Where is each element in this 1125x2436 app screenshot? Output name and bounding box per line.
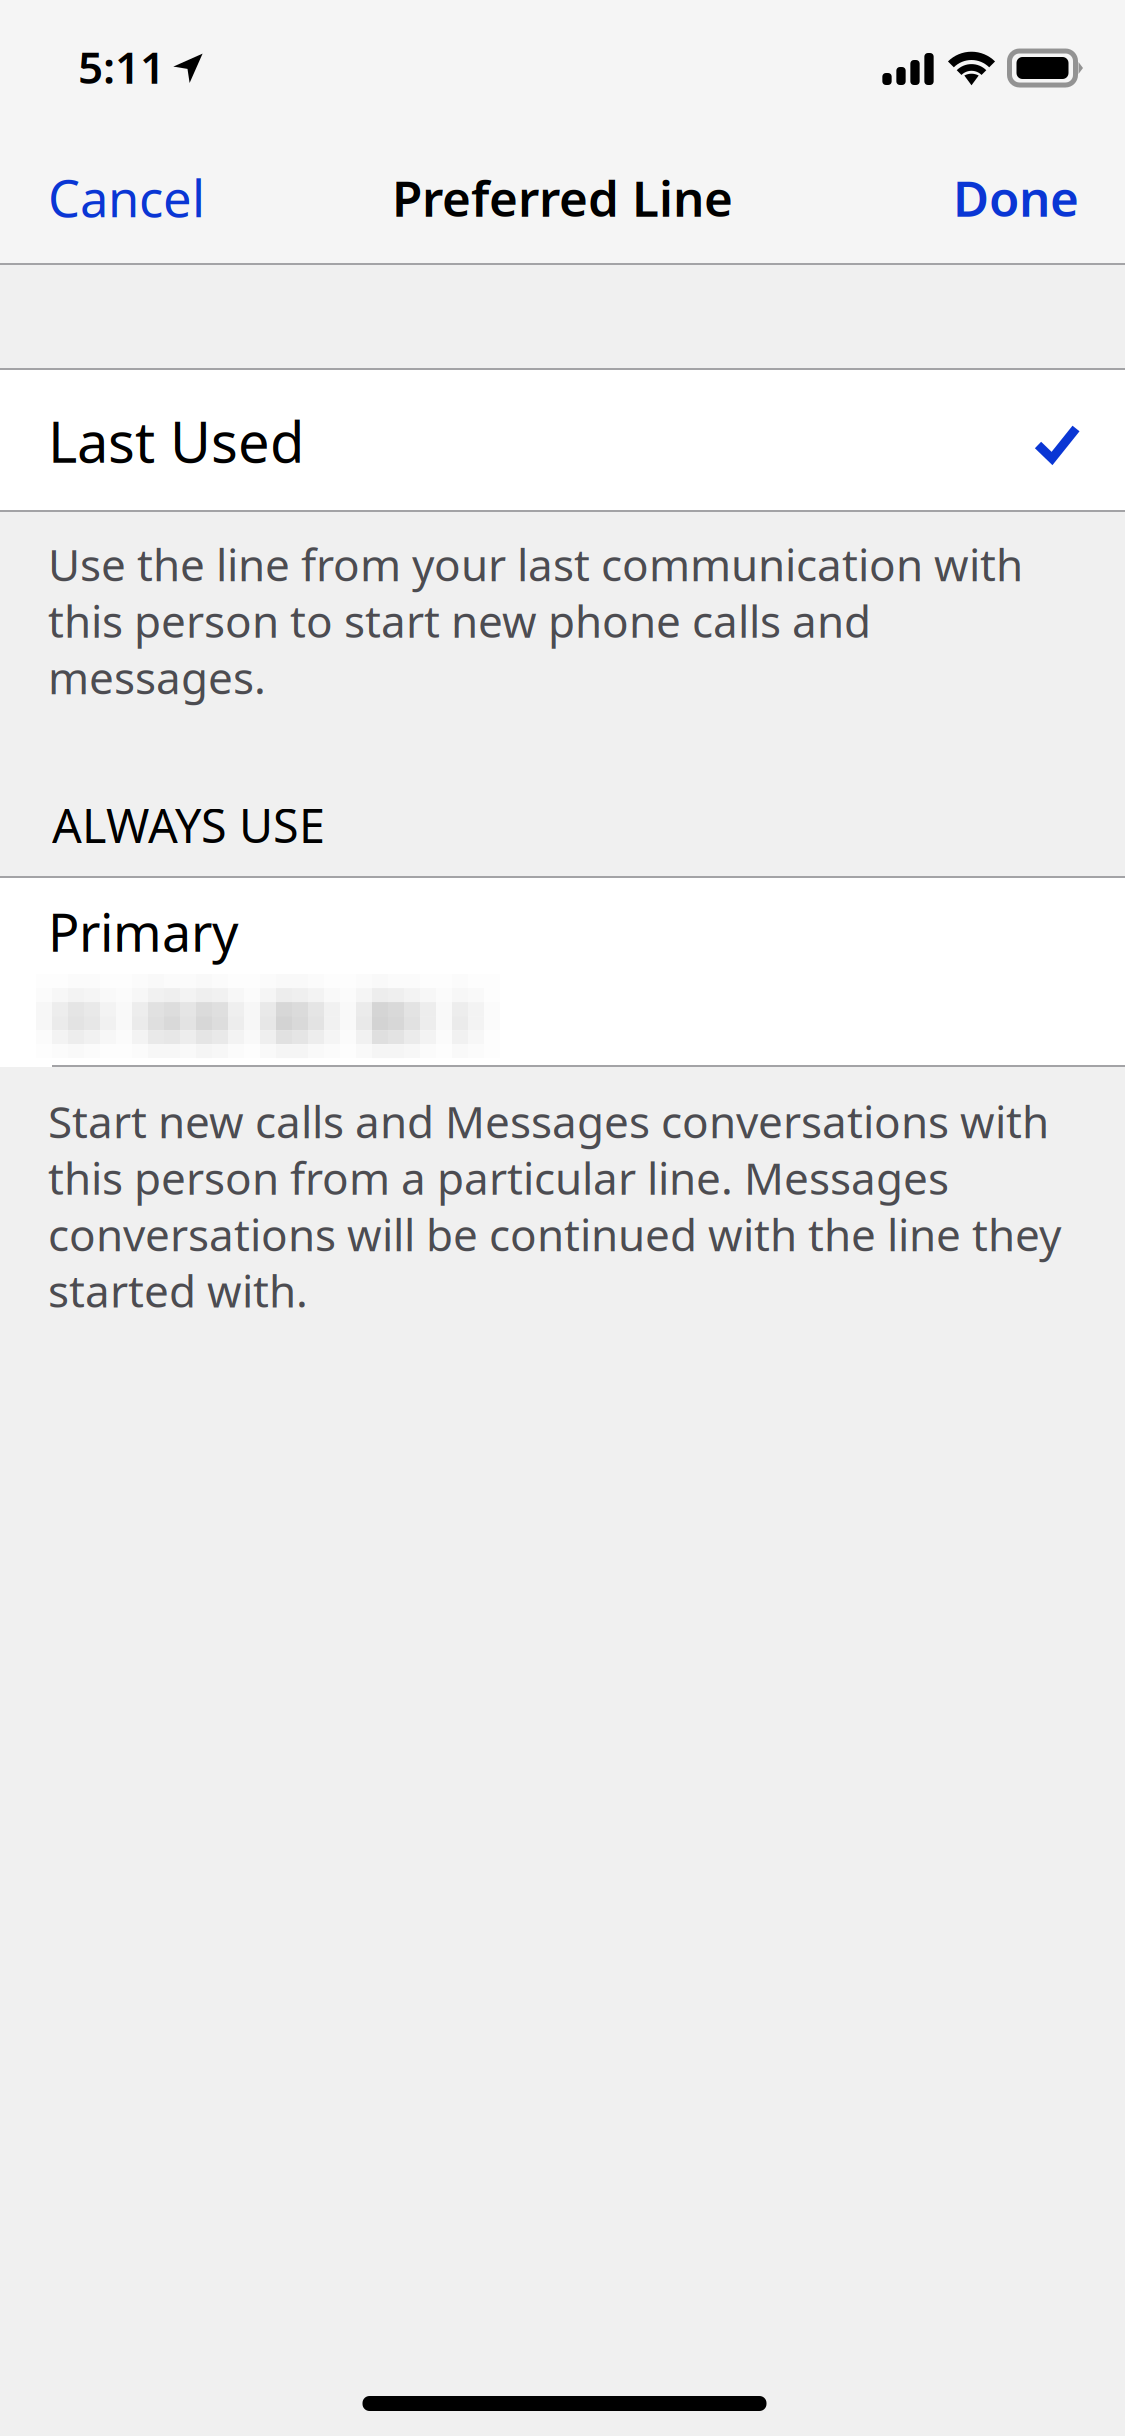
staticText: Cancel <box>48 164 205 231</box>
staticText: 5:11 <box>78 38 165 96</box>
staticText: Done <box>953 165 1079 230</box>
staticText: ALWAYS USE <box>52 794 325 856</box>
staticText: Last Used <box>48 404 304 478</box>
staticText: Start new calls and Messages conversatio… <box>48 1092 1061 1320</box>
staticText: Primary <box>48 897 239 966</box>
button[interactable]: Cancel <box>48 139 227 256</box>
button[interactable]: Primary <box>0 878 1125 1065</box>
button[interactable]: Done <box>931 140 1079 255</box>
button[interactable]: Last Used <box>0 370 1125 510</box>
staticText: Preferred Line <box>392 165 733 230</box>
staticText: Use the line from your last communicatio… <box>48 535 1023 706</box>
